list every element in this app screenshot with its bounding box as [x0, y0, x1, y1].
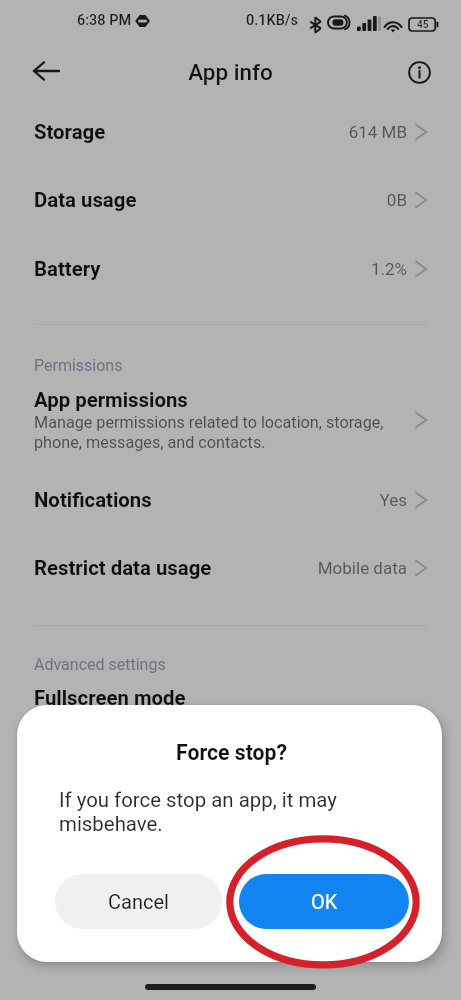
staticText: If you force stop an app, it may misbeha… [59, 788, 349, 836]
staticText: Cancel [108, 890, 169, 913]
staticText: Advanced settings [34, 655, 166, 674]
staticText: App permissions [34, 388, 188, 412]
button[interactable]: Battery [0, 232, 461, 300]
button[interactable]: Restrict data usage [0, 531, 461, 599]
staticText: App info [0, 59, 461, 85]
staticText: 614 MB [207, 122, 407, 142]
button[interactable]: Notifications [0, 463, 461, 531]
staticText: OK [311, 890, 338, 913]
button[interactable]: Back [26, 51, 66, 91]
staticText: Storage [34, 120, 106, 144]
button[interactable]: Data usage [0, 163, 461, 231]
staticText: Data usage [34, 188, 137, 212]
button[interactable]: Cancel [55, 874, 222, 929]
staticText: Force stop? [19, 740, 442, 765]
staticText: Battery [34, 257, 101, 281]
staticText: Notifications [34, 488, 152, 512]
button[interactable]: App permissions [0, 376, 461, 466]
staticText: 6:38 PM [77, 12, 132, 29]
staticText: Manage permissions related to location, … [34, 413, 390, 452]
staticText: Fullscreen mode [34, 686, 186, 710]
staticText: 0B [207, 190, 407, 210]
staticText: Yes [207, 490, 407, 510]
staticText: 45 [417, 19, 429, 31]
button[interactable]: Storage [0, 95, 461, 163]
staticText: Restrict data usage [34, 556, 212, 580]
button[interactable]: OK [239, 874, 409, 929]
button[interactable]: App details [399, 52, 439, 92]
staticText: Mobile data [207, 558, 407, 578]
staticText: 1.2% [207, 259, 407, 279]
staticText: Permissions [34, 356, 123, 375]
staticText: 0.1KB/s [246, 12, 299, 29]
